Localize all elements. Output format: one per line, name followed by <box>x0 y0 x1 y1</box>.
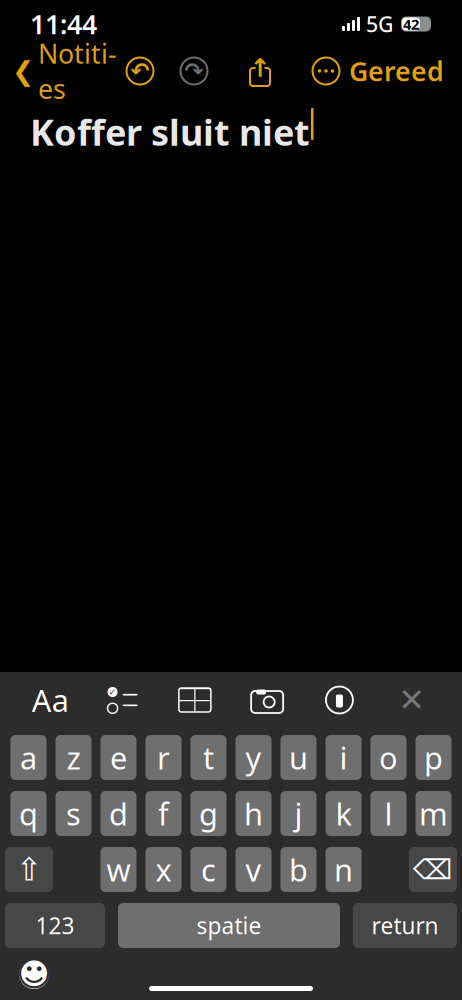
button[interactable]: u <box>280 735 316 780</box>
staticText: k <box>335 793 351 834</box>
button[interactable]: j <box>280 791 316 836</box>
button[interactable]: e <box>100 735 136 780</box>
button[interactable]: Text format <box>28 678 72 722</box>
button[interactable]: Emoji <box>12 952 56 996</box>
staticText: 42 <box>403 14 419 34</box>
button[interactable]: d <box>100 791 136 836</box>
button[interactable]: Undo <box>125 56 155 86</box>
button[interactable]: spatie <box>118 903 340 948</box>
button[interactable]: m <box>415 791 451 836</box>
button[interactable]: l <box>370 791 406 836</box>
button[interactable]: Table <box>173 678 217 722</box>
staticText: y <box>245 737 261 778</box>
staticText: s <box>66 793 81 834</box>
button[interactable]: q <box>10 791 46 836</box>
button[interactable]: v <box>235 847 271 892</box>
button[interactable]: ❮ <box>0 30 117 112</box>
button[interactable]: More <box>311 56 341 86</box>
staticText: ❮ <box>12 56 34 86</box>
button[interactable]: t <box>190 735 226 780</box>
staticText: ✕ <box>398 682 425 718</box>
button[interactable]: p <box>415 735 451 780</box>
button[interactable]: Share <box>245 56 275 86</box>
button[interactable]: Close keyboard <box>390 678 434 722</box>
button[interactable]: Redo <box>179 56 209 86</box>
button[interactable]: s <box>55 791 91 836</box>
button[interactable]: y <box>235 735 271 780</box>
button[interactable]: g <box>190 791 226 836</box>
button[interactable]: Gereed <box>349 47 462 95</box>
button[interactable]: Markup <box>317 678 361 722</box>
button[interactable]: i <box>325 735 361 780</box>
staticText: g <box>199 793 218 834</box>
staticText: Aa <box>32 680 69 720</box>
staticText: n <box>334 849 353 890</box>
staticText: 11:44 <box>30 6 97 42</box>
staticText: v <box>245 849 261 890</box>
staticText: ↶ <box>130 58 149 84</box>
staticText: q <box>19 793 38 834</box>
button[interactable]: w <box>100 847 136 892</box>
staticText: i <box>339 737 347 778</box>
button[interactable]: Delete <box>409 847 457 892</box>
button[interactable]: Checklist <box>101 678 145 722</box>
button[interactable]: o <box>370 735 406 780</box>
button[interactable]: a <box>10 735 46 780</box>
staticText: f <box>158 793 169 834</box>
button[interactable]: k <box>325 791 361 836</box>
staticText: p <box>424 737 443 778</box>
button[interactable]: Camera <box>245 678 289 722</box>
staticText: l <box>384 793 392 834</box>
staticText: o <box>379 737 398 778</box>
staticText: a <box>20 737 37 778</box>
staticText: m <box>419 793 448 834</box>
staticText: ⇧ <box>15 851 42 888</box>
button[interactable]: b <box>280 847 316 892</box>
staticText: x <box>155 849 171 890</box>
button[interactable]: Shift <box>5 847 53 892</box>
staticText: w <box>106 849 130 890</box>
staticText: d <box>109 793 128 834</box>
button[interactable]: r <box>145 735 181 780</box>
staticText: e <box>110 737 127 778</box>
staticText: return <box>371 910 438 940</box>
staticText: ⌫ <box>413 854 453 885</box>
button[interactable]: z <box>55 735 91 780</box>
staticText: ☺ <box>16 954 52 994</box>
staticText: spatie <box>196 910 261 940</box>
staticText: r <box>157 737 170 778</box>
staticText: Koffer sluit niet <box>30 108 310 156</box>
button[interactable]: return <box>353 903 457 948</box>
button[interactable]: 123 <box>5 903 105 948</box>
staticText: u <box>289 737 308 778</box>
button[interactable]: f <box>145 791 181 836</box>
staticText: 5G <box>366 10 394 38</box>
staticText: Gereed <box>349 53 444 89</box>
staticText: ↷ <box>184 58 203 84</box>
button[interactable]: c <box>190 847 226 892</box>
staticText: ↑ <box>249 54 270 82</box>
staticText: z <box>66 737 80 778</box>
staticText: c <box>201 849 216 890</box>
staticText: ✓ <box>109 687 117 697</box>
staticText: b <box>289 849 308 890</box>
button[interactable]: x <box>145 847 181 892</box>
button[interactable]: n <box>325 847 361 892</box>
staticText: h <box>244 793 263 834</box>
staticText: t <box>203 737 214 778</box>
button[interactable]: h <box>235 791 271 836</box>
staticText: 123 <box>35 910 74 940</box>
staticText: Notities <box>38 36 117 106</box>
staticText: j <box>294 793 302 834</box>
